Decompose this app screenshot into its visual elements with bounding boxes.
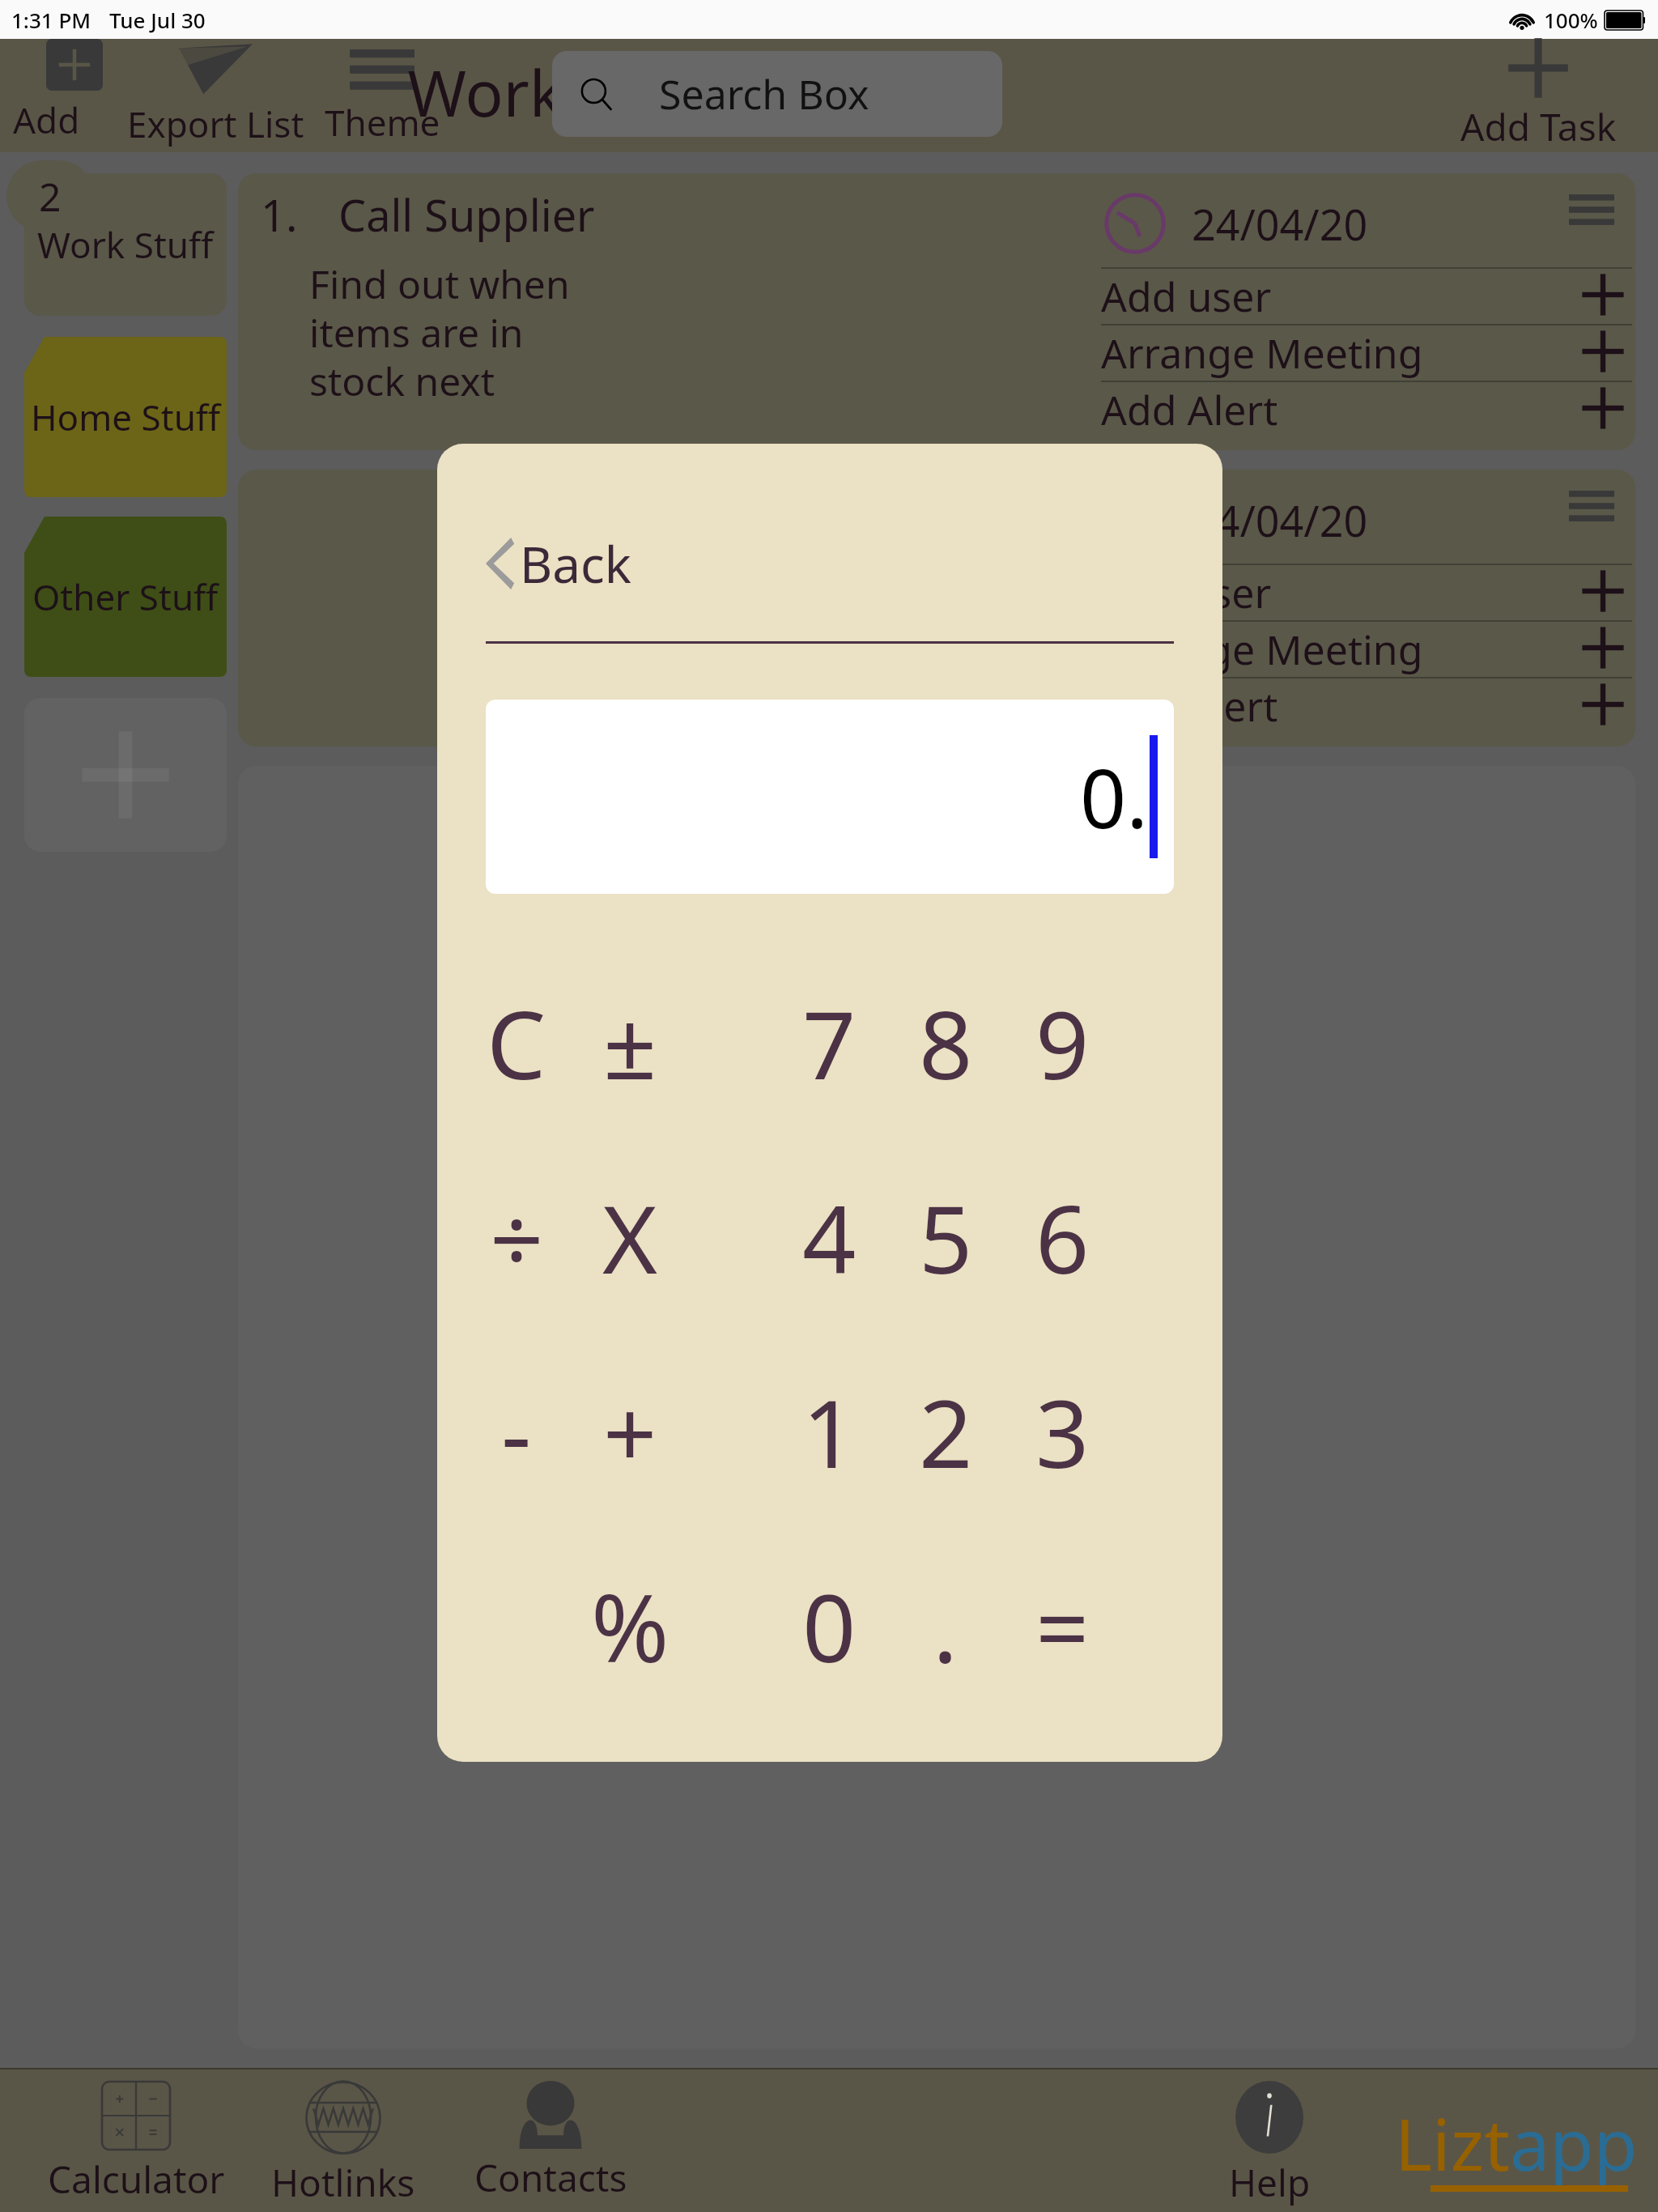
staticText: - xyxy=(501,1368,532,1495)
staticText: = xyxy=(1035,1562,1090,1690)
button[interactable]: 8 xyxy=(887,946,1004,1140)
button[interactable]: Help xyxy=(1174,2074,1365,2212)
button[interactable]: - xyxy=(460,1334,573,1529)
staticText: Calculator xyxy=(48,2154,225,2205)
staticText: 3 xyxy=(1035,1368,1090,1495)
button[interactable]: Home Stuff xyxy=(24,337,227,497)
staticText: 2 xyxy=(39,170,62,223)
button[interactable]: Add task xyxy=(238,766,1635,2048)
button[interactable]: 1. xyxy=(238,173,1635,450)
button[interactable]: Add user xyxy=(1101,565,1632,620)
staticText: 24/04/20 xyxy=(1192,491,1368,549)
button[interactable]: 0. xyxy=(486,700,1174,894)
staticText: Tue Jul 30 xyxy=(109,6,206,34)
staticText: X xyxy=(602,1173,657,1301)
button[interactable]: Add user xyxy=(1101,269,1632,324)
staticText: ÷ xyxy=(490,1173,544,1301)
staticText: 5 xyxy=(919,1173,973,1301)
button[interactable]: Back xyxy=(483,528,631,599)
staticText: Home Stuff xyxy=(31,393,221,441)
button[interactable]: ± xyxy=(573,946,687,1140)
button[interactable]: 1 xyxy=(771,1334,887,1529)
button[interactable]: = xyxy=(1004,1529,1120,1723)
button[interactable]: 24/04/20 xyxy=(238,470,1635,747)
staticText: 1 xyxy=(802,1368,857,1495)
button[interactable]: Arrange Meeting xyxy=(1101,622,1632,677)
staticText: Work Stuff xyxy=(37,220,214,269)
staticText: Arrange Meeting xyxy=(1101,622,1577,677)
staticText: Add user xyxy=(1101,269,1577,324)
staticText: 2 xyxy=(919,1368,973,1495)
staticText: Lizt xyxy=(1395,2095,1510,2192)
staticText: Export List xyxy=(127,100,304,148)
button[interactable]: 6 xyxy=(1004,1140,1120,1334)
staticText: % xyxy=(591,1562,670,1690)
staticText: Help xyxy=(1229,2157,1311,2208)
staticText: Add Alert xyxy=(1101,382,1577,437)
staticText: Add List xyxy=(13,96,136,152)
button[interactable]: 7 xyxy=(771,946,887,1140)
staticText: Add Alert xyxy=(1101,678,1577,734)
button[interactable]: Add Alert xyxy=(1101,678,1632,734)
staticText: Work Stuff xyxy=(321,49,806,135)
button[interactable]: Export List xyxy=(126,43,304,148)
staticText: + xyxy=(603,1368,657,1495)
staticText: Call Supplier xyxy=(338,185,595,245)
staticText: C xyxy=(487,979,546,1107)
button[interactable]: Search Box xyxy=(552,51,1002,137)
staticText: Contacts xyxy=(474,2152,627,2203)
button[interactable]: Add Alert xyxy=(1101,382,1632,437)
staticText: Arrange Meeting xyxy=(1101,325,1577,381)
button[interactable]: Other Stuff xyxy=(24,517,227,677)
staticText: 4 xyxy=(802,1173,857,1301)
staticText: . xyxy=(933,1562,959,1690)
staticText: Add Task xyxy=(1460,101,1617,152)
button[interactable]: Add Task xyxy=(1438,40,1639,152)
button[interactable]: % xyxy=(573,1529,687,1723)
staticText: 6 xyxy=(1035,1173,1090,1301)
staticText: Find out when items are in stock next xyxy=(309,257,657,407)
button[interactable]: + xyxy=(573,1334,687,1529)
button[interactable]: Add List xyxy=(13,39,136,152)
staticText: 1:31 PM xyxy=(11,6,91,34)
button[interactable]: 5 xyxy=(887,1140,1004,1334)
staticText: 8 xyxy=(919,979,973,1107)
button[interactable]: 4 xyxy=(771,1140,887,1334)
button[interactable]: Work Stuff xyxy=(24,173,227,316)
staticText: 0 xyxy=(802,1562,857,1690)
button[interactable]: 9 xyxy=(1004,946,1120,1140)
button[interactable]: 2 xyxy=(887,1334,1004,1529)
staticText: 1. xyxy=(261,185,298,245)
staticText: Add user xyxy=(1101,565,1577,620)
button[interactable]: C xyxy=(460,946,573,1140)
staticText: 100% xyxy=(1544,6,1598,34)
staticText: 0. xyxy=(1080,742,1148,852)
button[interactable]: Calculator xyxy=(32,2074,240,2212)
staticText: Back xyxy=(520,530,631,598)
staticText: Hotlinks xyxy=(271,2157,415,2208)
button[interactable]: 0 xyxy=(771,1529,887,1723)
staticText: 24/04/20 xyxy=(1192,195,1368,253)
button[interactable]: Theme xyxy=(304,45,460,147)
staticText: Other Stuff xyxy=(32,572,219,621)
button[interactable]: ÷ xyxy=(460,1140,573,1334)
button[interactable]: Hotlinks xyxy=(240,2074,447,2212)
staticText: 7 xyxy=(802,979,857,1107)
staticText: Search Box xyxy=(659,66,869,121)
button[interactable]: Arrange Meeting xyxy=(1101,325,1632,381)
staticText: ± xyxy=(603,979,657,1107)
staticText: Theme xyxy=(325,98,440,147)
button[interactable]: Lizt xyxy=(1375,2074,1658,2212)
button[interactable]: 3 xyxy=(1004,1334,1120,1529)
button[interactable]: X xyxy=(573,1140,687,1334)
staticText: 9 xyxy=(1035,979,1090,1107)
staticText: app xyxy=(1510,2095,1638,2192)
button[interactable]: Contacts xyxy=(447,2074,654,2212)
button[interactable]: . xyxy=(887,1529,1004,1723)
